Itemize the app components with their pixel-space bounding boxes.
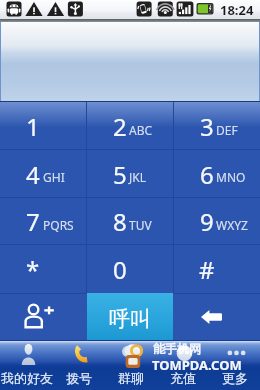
button[interactable]: 6 xyxy=(173,149,260,197)
staticText: 更多 xyxy=(222,370,248,386)
staticText: 拨号 xyxy=(66,370,92,386)
staticText: ABC xyxy=(129,122,153,138)
staticText: 充值 xyxy=(170,370,196,386)
button[interactable]: 3 xyxy=(173,102,260,149)
staticText: 呼叫 xyxy=(109,306,151,332)
staticText: 9 xyxy=(200,205,214,238)
button[interactable]: 9 xyxy=(173,197,260,244)
staticText: TUV xyxy=(129,217,152,233)
staticText: 2 xyxy=(113,110,127,143)
staticText: WXYZ xyxy=(216,217,248,233)
staticText: JKL xyxy=(129,169,146,185)
button[interactable]: 5 xyxy=(86,149,173,197)
staticText: PQRS xyxy=(43,217,74,233)
staticText: DEF xyxy=(216,122,238,138)
staticText: 6 xyxy=(200,158,214,191)
button[interactable]: 呼叫 xyxy=(87,293,173,340)
staticText: 5 xyxy=(113,158,127,191)
button[interactable]: Backspace xyxy=(173,293,260,340)
staticText: 1 xyxy=(26,110,40,143)
staticText: 3 xyxy=(200,110,214,143)
staticText: TOMPDA.COM xyxy=(152,356,242,374)
button[interactable]: # xyxy=(173,244,260,293)
button[interactable]: 2 xyxy=(86,102,173,149)
staticText: 我的好友 xyxy=(1,370,53,386)
staticText: 18:24 xyxy=(220,1,254,19)
button[interactable]: Add contact xyxy=(0,293,87,340)
button[interactable]: 4 xyxy=(0,149,86,197)
button[interactable]: 1 xyxy=(0,102,86,149)
button[interactable]: 我的好友 xyxy=(0,340,52,390)
button[interactable]: 8 xyxy=(86,197,173,244)
staticText: 0 xyxy=(113,253,127,286)
staticText: MNO xyxy=(216,169,246,185)
button[interactable]: * xyxy=(0,244,86,293)
staticText: 7 xyxy=(26,205,40,238)
staticText: 群聊 xyxy=(118,370,144,386)
staticText: 4 xyxy=(26,158,40,191)
staticText: # xyxy=(199,253,215,286)
staticText: 能手机网 xyxy=(153,341,201,356)
button[interactable]: 0 xyxy=(86,244,173,293)
staticText: 8 xyxy=(113,205,127,238)
button[interactable]: 拨号 xyxy=(52,340,104,390)
button[interactable]: 更多 xyxy=(208,340,260,390)
staticText: GHI xyxy=(43,169,65,185)
button[interactable]: 7 xyxy=(0,197,86,244)
button[interactable]: 充值 xyxy=(156,340,208,390)
button[interactable]: 群聊 xyxy=(104,340,156,390)
staticText: * xyxy=(26,253,40,286)
